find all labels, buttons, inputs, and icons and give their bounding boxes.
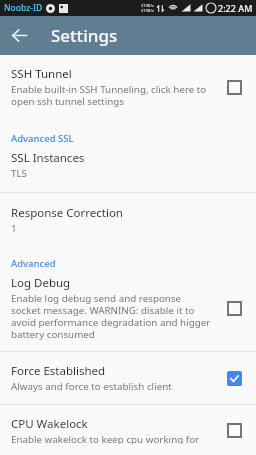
staticText: Log Debug — [11, 275, 71, 291]
button[interactable]: Unchecked — [221, 295, 247, 321]
staticText: Advanced — [11, 257, 56, 270]
button[interactable]: Checked — [221, 365, 247, 391]
staticText: Response Correction — [11, 205, 123, 221]
staticText: Settings — [51, 24, 118, 47]
button[interactable]: Log Debug — [0, 272, 256, 351]
staticText: Force Established — [11, 363, 106, 379]
staticText: Advanced SSL — [11, 132, 74, 145]
staticText: 1 — [11, 222, 17, 235]
button[interactable]: Unchecked — [221, 74, 247, 100]
staticText: 319B/s — [141, 3, 154, 8]
staticText: Enable log debug send and response socke… — [11, 292, 213, 341]
button[interactable]: Back — [0, 16, 39, 55]
staticText: SSL Instances — [11, 150, 85, 166]
staticText: 2:22 AM — [218, 2, 253, 14]
staticText: SSH Tunnel — [11, 66, 72, 82]
staticText: Noobz-ID — [4, 2, 43, 14]
staticText: Enable built-in SSH Tunneling, click her… — [11, 83, 213, 108]
button[interactable]: CPU Wakelock — [0, 405, 256, 455]
staticText: Always and force to establish client — [11, 380, 172, 393]
staticText: 319B/s — [141, 8, 154, 13]
staticText: TLS — [11, 167, 27, 180]
button[interactable]: SSL Instances — [0, 147, 256, 192]
staticText: Enable wakelock to keep cpu working for … — [11, 433, 213, 444]
button[interactable]: Unchecked — [221, 417, 247, 443]
staticText: CPU Wakelock — [11, 416, 88, 432]
button[interactable]: SSH Tunnel — [0, 55, 256, 119]
button[interactable]: Response Correction — [0, 193, 256, 247]
button[interactable]: Force Established — [0, 352, 256, 404]
